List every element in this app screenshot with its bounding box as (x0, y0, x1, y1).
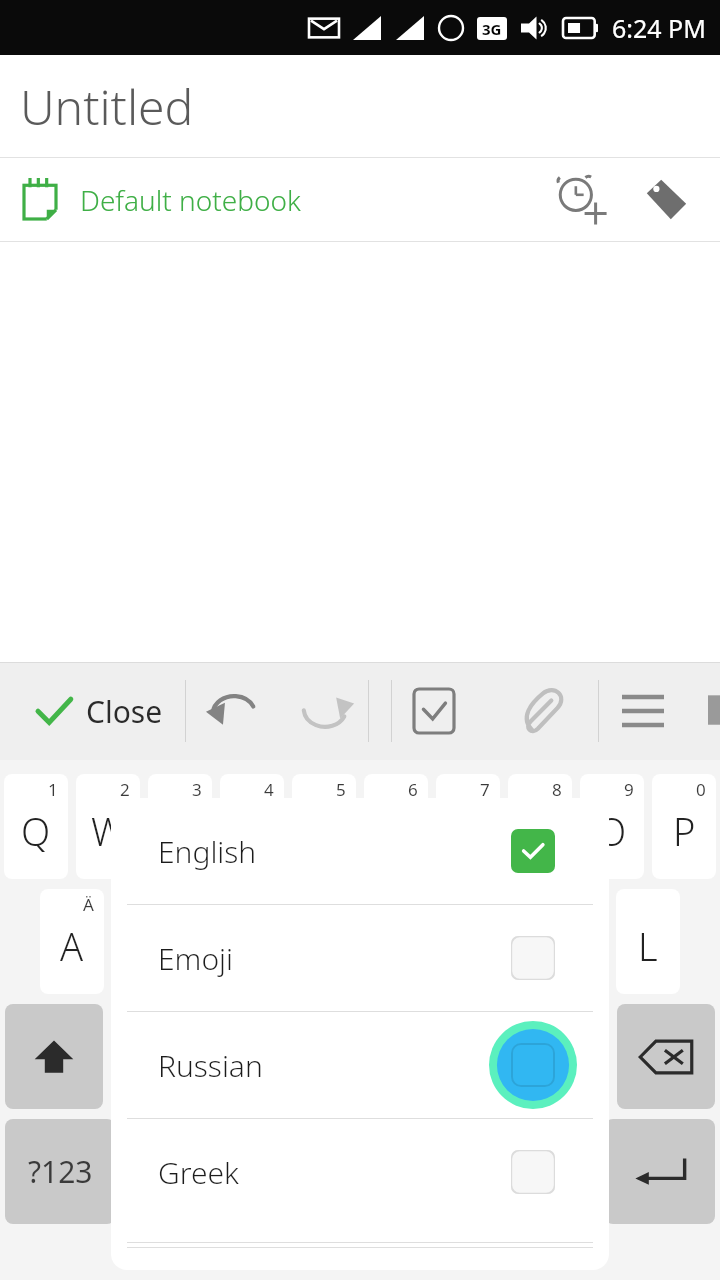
button[interactable]: 9 (580, 774, 644, 879)
staticText: L (638, 920, 658, 972)
staticText: Close (86, 691, 163, 732)
button[interactable]: Checkbox (392, 662, 476, 760)
button[interactable]: F (256, 889, 320, 994)
staticText: 8 (552, 778, 562, 801)
staticText: A (60, 920, 84, 972)
staticText: 9 (624, 778, 634, 801)
button[interactable]: C (256, 1004, 320, 1109)
staticText: 1 (48, 778, 58, 801)
staticText: Default notebook (80, 181, 301, 219)
button[interactable]: K (544, 889, 608, 994)
staticText: W (91, 805, 126, 857)
button[interactable] (204, 1119, 516, 1224)
button[interactable]: 1 (4, 774, 68, 879)
button[interactable]: 5 (292, 774, 356, 879)
staticText: 0 (696, 778, 706, 801)
staticText: I (534, 805, 546, 857)
button[interactable]: Redo (282, 662, 368, 760)
staticText: 4 (264, 778, 274, 801)
button[interactable]: 7 (436, 774, 500, 879)
button[interactable]: Close (34, 691, 163, 732)
button[interactable]: B (400, 1004, 464, 1109)
button[interactable]: English (111, 798, 609, 904)
button[interactable]: Tags (638, 172, 694, 228)
button[interactable]: enter (605, 1119, 715, 1224)
staticText: Ä (83, 893, 94, 916)
button[interactable]: 0 (652, 774, 716, 879)
button[interactable]: . (524, 1119, 596, 1224)
button[interactable]: M (544, 1004, 608, 1109)
staticText: Q (21, 805, 51, 857)
staticText: English (158, 831, 257, 872)
button[interactable]: 6 (364, 774, 428, 879)
staticText: 6:24 PM (612, 11, 706, 45)
button[interactable]: D (184, 889, 248, 994)
staticText: M (559, 1035, 593, 1087)
button[interactable]: ?123 (5, 1119, 115, 1224)
button[interactable]: Emoji (111, 905, 609, 1011)
staticText: R (241, 805, 264, 857)
staticText: N (490, 1035, 518, 1087)
staticText: 5 (336, 778, 346, 801)
button[interactable]: S (112, 889, 176, 994)
button[interactable]: Menu (599, 662, 687, 760)
button[interactable]: Undo (186, 662, 282, 760)
staticText: D (202, 920, 230, 972)
staticText: Russian (158, 1045, 263, 1086)
button[interactable]: J (472, 889, 536, 994)
button[interactable]: Greek (111, 1119, 609, 1225)
staticText: P (673, 805, 696, 857)
button[interactable]: Ä (40, 889, 104, 994)
staticText: 3G (482, 19, 502, 39)
staticText: 6 (408, 778, 418, 801)
staticText: Emoji (158, 938, 233, 979)
button[interactable]: 2 (76, 774, 140, 879)
button[interactable]: N (472, 1004, 536, 1109)
button[interactable]: Z (112, 1004, 176, 1109)
button[interactable]: G (328, 889, 392, 994)
button[interactable]: shift (5, 1004, 103, 1109)
staticText: Greek (158, 1152, 239, 1193)
staticText: E (169, 805, 191, 857)
button[interactable]: Add reminder (552, 172, 608, 228)
button[interactable]: 3 (148, 774, 212, 879)
button[interactable]: , (124, 1119, 196, 1224)
staticText: 2 (120, 778, 130, 801)
staticText: O (597, 805, 627, 857)
button[interactable]: H (400, 889, 464, 994)
staticText: 7 (480, 778, 490, 801)
staticText: X (206, 1035, 227, 1087)
button[interactable]: backspace (617, 1004, 715, 1109)
staticText: Untitled (20, 74, 194, 139)
button[interactable]: 8 (508, 774, 572, 879)
button[interactable]: Default notebook (22, 177, 301, 223)
button[interactable]: 4 (220, 774, 284, 879)
button[interactable]: X (184, 1004, 248, 1109)
staticText: 3 (192, 778, 202, 801)
button[interactable]: Attach (510, 662, 576, 760)
button[interactable]: V (328, 1004, 392, 1109)
staticText: ?123 (28, 1151, 93, 1192)
button[interactable]: Russian (111, 1012, 609, 1118)
button[interactable]: L (616, 889, 680, 994)
staticText: , (156, 1150, 165, 1202)
